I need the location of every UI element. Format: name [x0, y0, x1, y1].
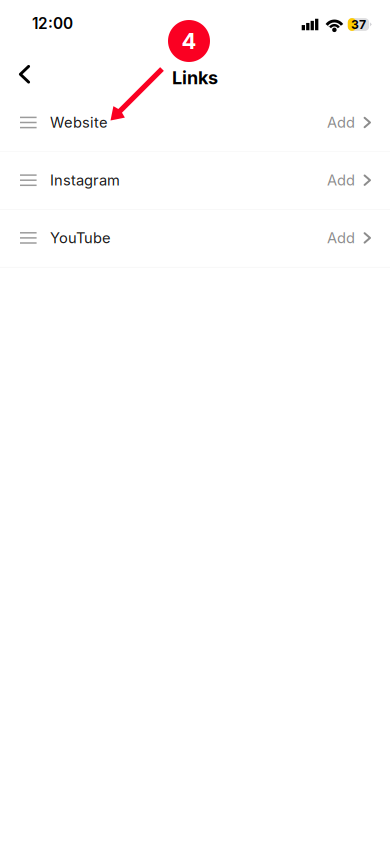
staticText: 37 [351, 17, 366, 32]
staticText: Add [327, 171, 355, 189]
staticText: Instagram [50, 171, 120, 189]
staticText: Add [327, 229, 355, 247]
button[interactable]: Back [3, 53, 45, 95]
button[interactable]: Website [0, 94, 390, 151]
staticText: 4 [181, 28, 196, 54]
staticText: YouTube [50, 229, 111, 247]
staticText: Add [327, 114, 355, 131]
staticText: Website [50, 114, 108, 131]
button[interactable]: Instagram [0, 152, 390, 209]
button[interactable]: YouTube [0, 210, 390, 267]
staticText: Links [172, 67, 218, 89]
staticText: 12:00 [32, 14, 73, 33]
